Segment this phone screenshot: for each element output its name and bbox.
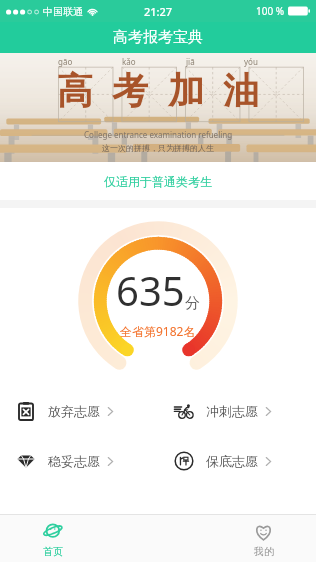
staticText: kǎo xyxy=(122,56,136,67)
staticText: yóu xyxy=(244,56,258,67)
staticText: 高考报考宝典 xyxy=(113,28,203,47)
staticText: 中国联通 xyxy=(43,5,83,18)
staticText: jiā xyxy=(186,56,195,67)
staticText: 首页 xyxy=(43,545,63,558)
staticText: College entrance examination refueling xyxy=(84,129,233,140)
staticText: 仅适用于普通类考生 xyxy=(104,174,212,189)
staticText: 分 xyxy=(185,294,200,313)
staticText: 这一次的拼搏，只为拼搏的人生 xyxy=(102,143,214,153)
button[interactable]: 保底志愿 xyxy=(158,443,316,479)
staticText: 100 % xyxy=(256,4,285,18)
staticText: 稳妥志愿 xyxy=(48,453,100,469)
button[interactable]: 稳妥志愿 xyxy=(0,443,158,479)
staticText: 保底志愿 xyxy=(206,453,258,469)
staticText: gāo xyxy=(58,56,73,67)
staticText: 冲刺志愿 xyxy=(206,403,258,419)
staticText: 高 xyxy=(57,68,93,113)
button[interactable]: 放弃志愿 xyxy=(0,393,158,429)
button[interactable]: 首页 xyxy=(0,515,106,558)
staticText: 635 xyxy=(116,263,185,317)
staticText: 油 xyxy=(223,68,259,113)
staticText: 全省第9182名 xyxy=(120,323,196,339)
button[interactable]: 冲刺志愿 xyxy=(158,393,316,429)
staticText: 21:27 xyxy=(144,4,173,19)
staticText: 加 xyxy=(168,68,204,113)
staticText: 我的 xyxy=(254,545,274,558)
button[interactable]: 我的 xyxy=(211,515,316,558)
staticText: 放弃志愿 xyxy=(48,403,100,419)
staticText: 考 xyxy=(112,68,148,113)
